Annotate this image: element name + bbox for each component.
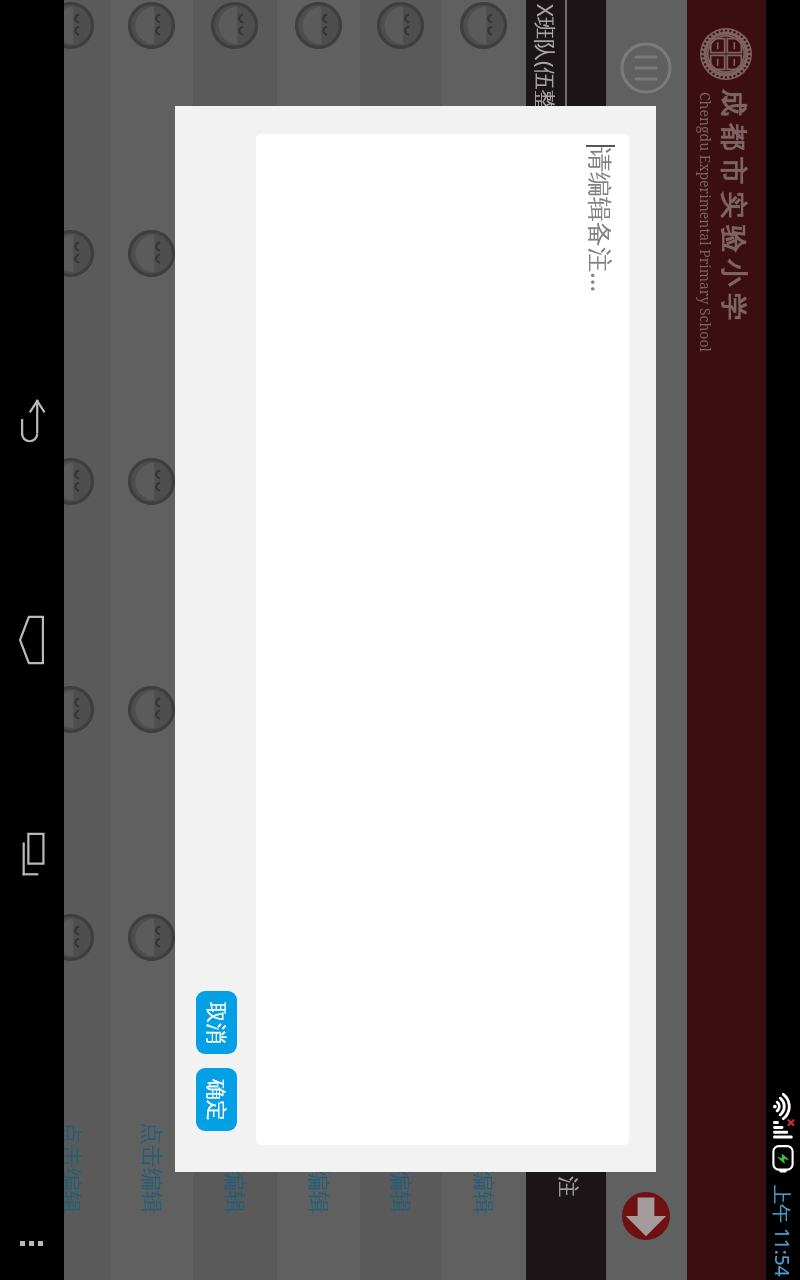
button[interactable]: 点击编辑 <box>110 0 193 1280</box>
button[interactable]: 点击编辑 <box>442 0 526 1280</box>
button[interactable]: 点击编辑 <box>360 0 442 1280</box>
staticText: 请编辑备注... <box>584 147 618 293</box>
staticText: 点击编辑 <box>386 1122 415 1214</box>
staticText: 点击编辑 <box>56 1122 85 1214</box>
staticText: 点击编辑 <box>220 1122 249 1214</box>
staticText: 成 都 市 实 验 小 学 <box>716 90 753 322</box>
button[interactable]: Recents <box>0 825 64 889</box>
button[interactable]: 请编辑备注... <box>256 134 629 1145</box>
staticText: X班队(伍整齐) <box>531 4 561 141</box>
button[interactable]: 确定 <box>196 1068 237 1131</box>
button[interactable]: Scroll right <box>622 1192 670 1240</box>
button[interactable]: Menu <box>619 41 673 95</box>
staticText: 确定 <box>203 1079 229 1121</box>
staticText: 上午 11:54 <box>769 1185 795 1277</box>
staticText: Chengdu Experimental Primary School <box>696 92 715 352</box>
staticText: 点击编辑 <box>469 1122 498 1214</box>
button[interactable]: 点击编辑 <box>193 0 277 1280</box>
button[interactable]: 点击编辑 <box>32 0 110 1280</box>
staticText: 点击编辑 <box>304 1122 333 1214</box>
button[interactable]: Back <box>0 391 64 455</box>
button[interactable]: 取消 <box>196 991 237 1054</box>
staticText: 注 <box>555 1176 581 1197</box>
button[interactable]: Home <box>0 608 64 672</box>
button[interactable]: 点击编辑 <box>277 0 360 1280</box>
staticText: 点击编辑 <box>137 1122 166 1214</box>
staticText: 取消 <box>203 1002 229 1044</box>
